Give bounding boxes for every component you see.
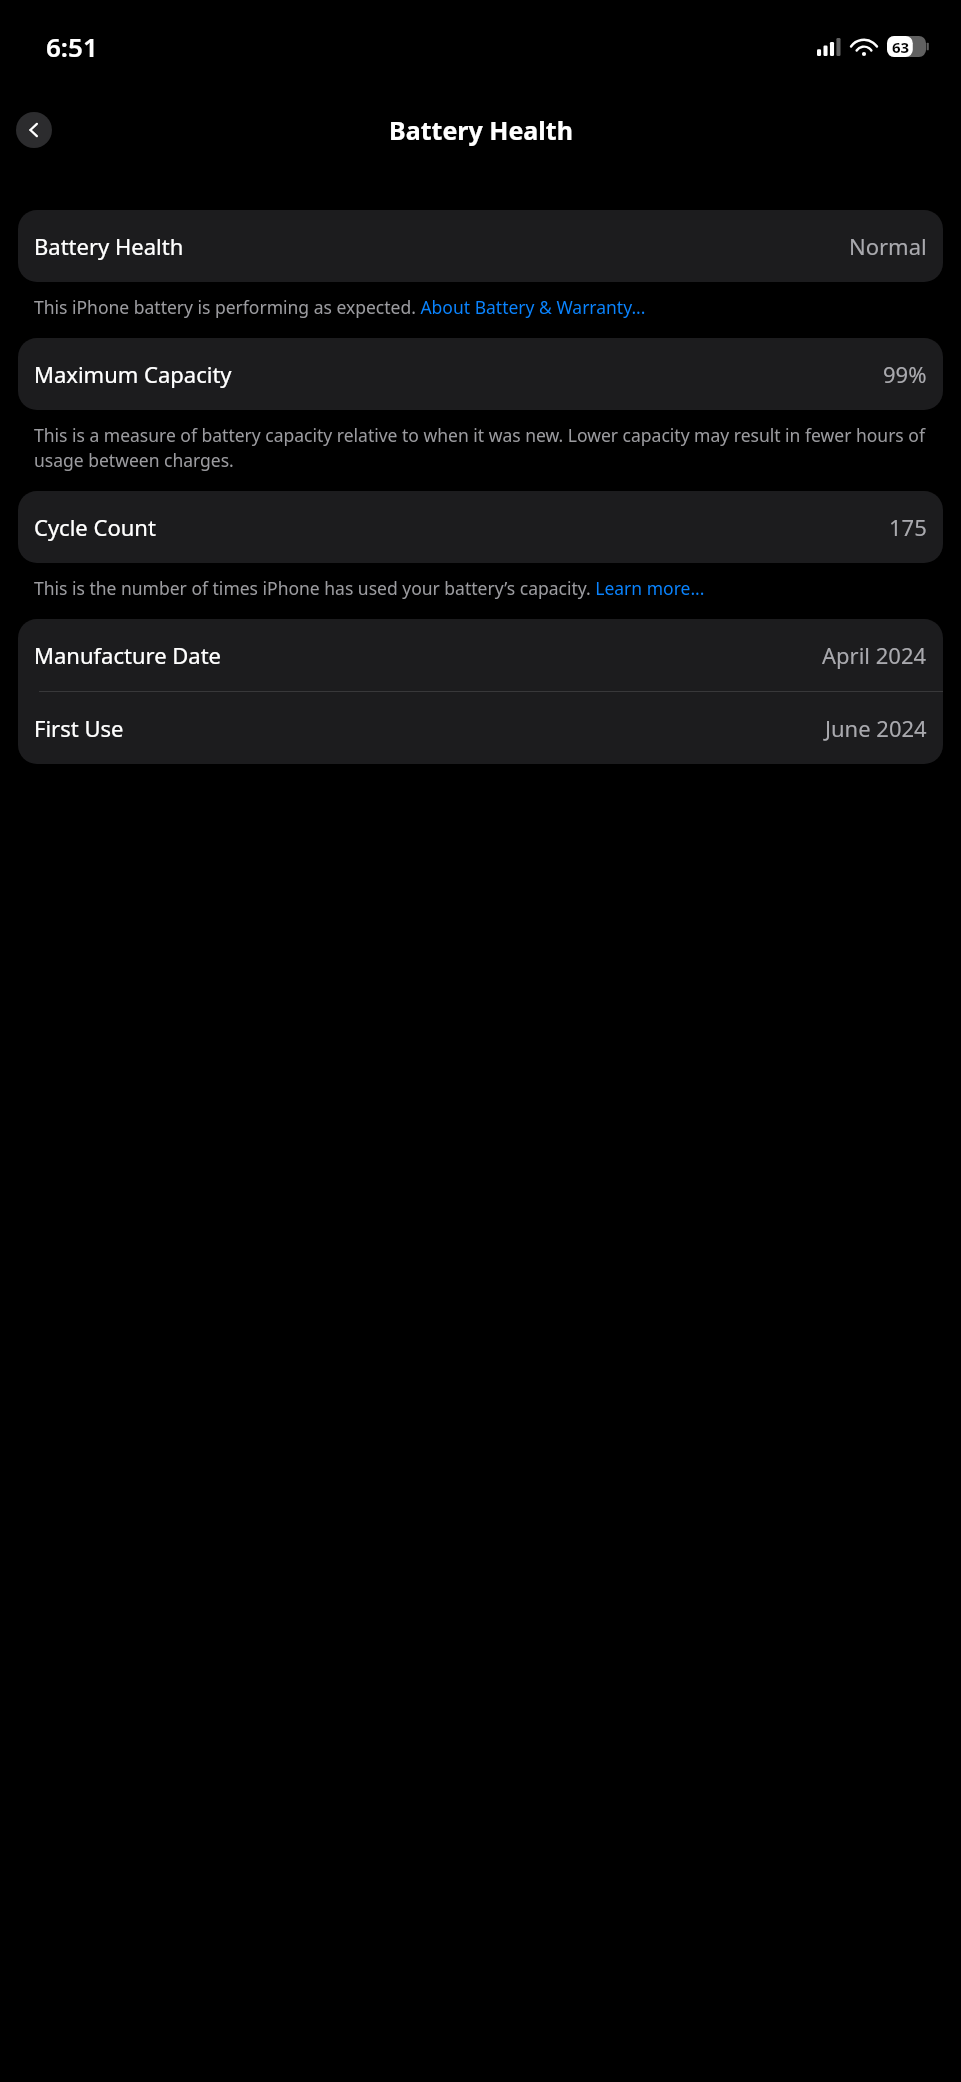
staticText: 99%	[883, 359, 927, 389]
staticText: Maximum Capacity	[34, 359, 232, 389]
staticText: June 2024	[825, 713, 927, 743]
staticText: This iPhone battery is performing as exp…	[34, 295, 646, 319]
staticText: 63	[892, 37, 910, 57]
staticText: 6:51	[46, 29, 98, 64]
staticText: First Use	[34, 713, 124, 743]
staticText: Cycle Count	[34, 512, 156, 542]
staticText: 175	[889, 512, 927, 542]
staticText: Normal	[849, 231, 927, 261]
button[interactable]: Cycle Count	[18, 491, 943, 563]
button[interactable]: Battery Health	[18, 210, 943, 282]
staticText: Manufacture Date	[34, 640, 222, 670]
button[interactable]: Back	[16, 112, 52, 148]
button[interactable]: Manufacture Date	[18, 619, 943, 691]
staticText: This is a measure of battery capacity re…	[34, 423, 933, 472]
button[interactable]: Maximum Capacity	[18, 338, 943, 410]
button[interactable]: This is a measure of battery capacity re…	[34, 423, 933, 472]
staticText: Battery Health	[389, 113, 573, 147]
staticText: This is the number of times iPhone has u…	[34, 576, 705, 600]
button[interactable]: This is the number of times iPhone has u…	[34, 576, 933, 600]
button[interactable]: This iPhone battery is performing as exp…	[34, 295, 933, 319]
staticText: Battery Health	[34, 231, 184, 261]
button[interactable]: First Use	[18, 692, 943, 764]
staticText: April 2024	[822, 640, 927, 670]
